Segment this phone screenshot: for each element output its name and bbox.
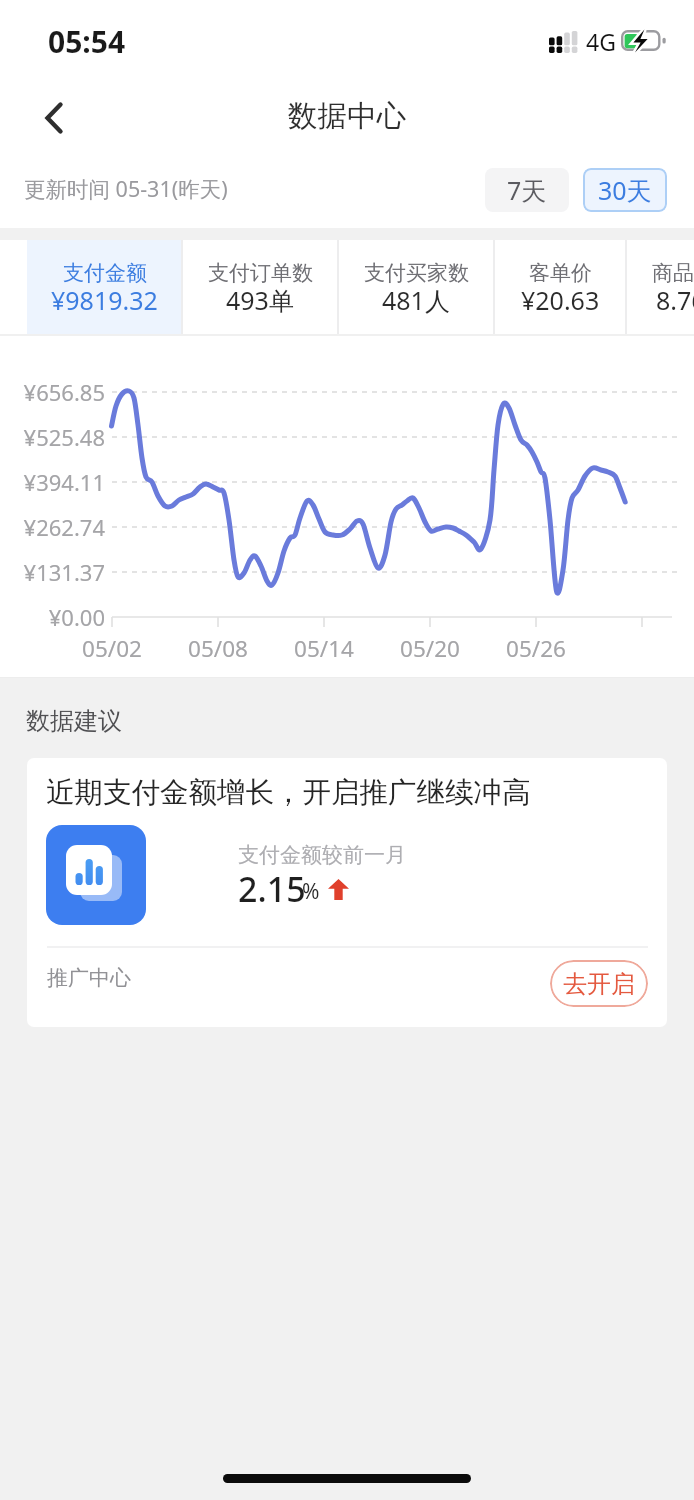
staticText: % [302, 877, 320, 906]
staticText: 推广中心 [47, 965, 131, 991]
staticText: 商品访客 [652, 260, 694, 286]
staticText: 近期支付金额增长，开启推广继续冲高 [46, 775, 531, 811]
staticText: 05/20 [388, 633, 472, 664]
staticText: ¥20.63 [521, 283, 600, 317]
staticText: 05/02 [70, 633, 154, 664]
staticText: ¥9819.32 [51, 283, 158, 317]
staticText: 支付买家数 [364, 260, 469, 286]
staticText: ¥394.11 [23, 467, 105, 497]
staticText: 去开启 [563, 969, 635, 999]
staticText: ¥525.48 [23, 422, 105, 452]
button[interactable]: 支付金额 [27, 240, 182, 336]
button[interactable]: 客单价 [494, 240, 626, 336]
button[interactable]: 近期支付金额增长，开启推广继续冲高 [27, 758, 667, 1027]
staticText: 支付金额 [63, 260, 147, 286]
button[interactable]: 商品访客 [626, 240, 694, 336]
staticText: 4G [586, 26, 616, 57]
staticText: 05/26 [494, 633, 578, 664]
staticText: 05/08 [176, 633, 260, 664]
staticText: 493单 [226, 283, 294, 317]
button[interactable]: 30天 [583, 168, 667, 212]
staticText: 7天 [507, 173, 547, 207]
staticText: 481人 [382, 283, 450, 317]
staticText: ¥262.74 [23, 512, 105, 542]
staticText: 支付订单数 [208, 260, 313, 286]
button[interactable]: 去开启 [550, 960, 648, 1007]
staticText: 客单价 [529, 260, 592, 286]
staticText: 05:54 [48, 21, 126, 62]
button[interactable]: 7天 [485, 168, 569, 212]
staticText: ¥131.37 [23, 557, 105, 587]
button[interactable]: 支付买家数 [338, 240, 494, 336]
staticText: 数据中心 [288, 98, 406, 135]
staticText: 数据建议 [26, 706, 122, 736]
staticText: 30天 [598, 173, 652, 207]
staticText: ¥656.85 [23, 377, 105, 407]
staticText: 8.76万 [656, 283, 694, 317]
staticText: ¥0.00 [23, 602, 105, 632]
button[interactable]: Back [20, 84, 88, 152]
button[interactable]: 支付订单数 [182, 240, 338, 336]
staticText: 支付金额较前一月 [238, 842, 406, 868]
staticText: 更新时间 05-31(昨天) [24, 174, 228, 203]
staticText: 2.15 [238, 866, 306, 912]
staticText: 05/14 [282, 633, 366, 664]
